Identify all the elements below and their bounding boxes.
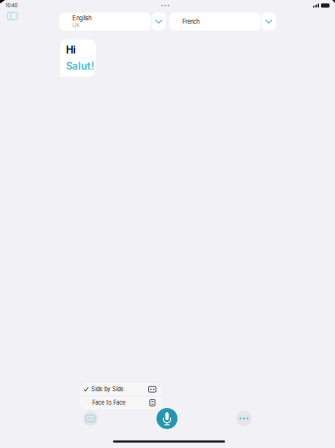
button[interactable]: French bbox=[169, 12, 261, 30]
button[interactable]: More options bbox=[236, 411, 252, 426]
button[interactable]: Choose language bbox=[262, 12, 276, 30]
staticText: English bbox=[72, 15, 91, 22]
button[interactable]: Side by Side bbox=[80, 383, 161, 396]
staticText: 10:40 bbox=[5, 2, 17, 8]
staticText: Salut! bbox=[66, 60, 94, 72]
staticText: Hi bbox=[66, 44, 76, 56]
button[interactable]: Conversation layout bbox=[83, 411, 98, 426]
staticText: UK bbox=[72, 22, 79, 28]
staticText: Face to Face bbox=[92, 399, 125, 406]
button[interactable]: Show sidebar bbox=[4, 8, 20, 24]
button[interactable]: English bbox=[59, 12, 151, 30]
staticText: French bbox=[182, 18, 199, 25]
button[interactable]: Choose language bbox=[152, 12, 166, 30]
staticText: Side by Side bbox=[91, 386, 123, 393]
button[interactable]: Face to Face bbox=[80, 396, 161, 409]
button[interactable]: Record bbox=[156, 408, 177, 429]
